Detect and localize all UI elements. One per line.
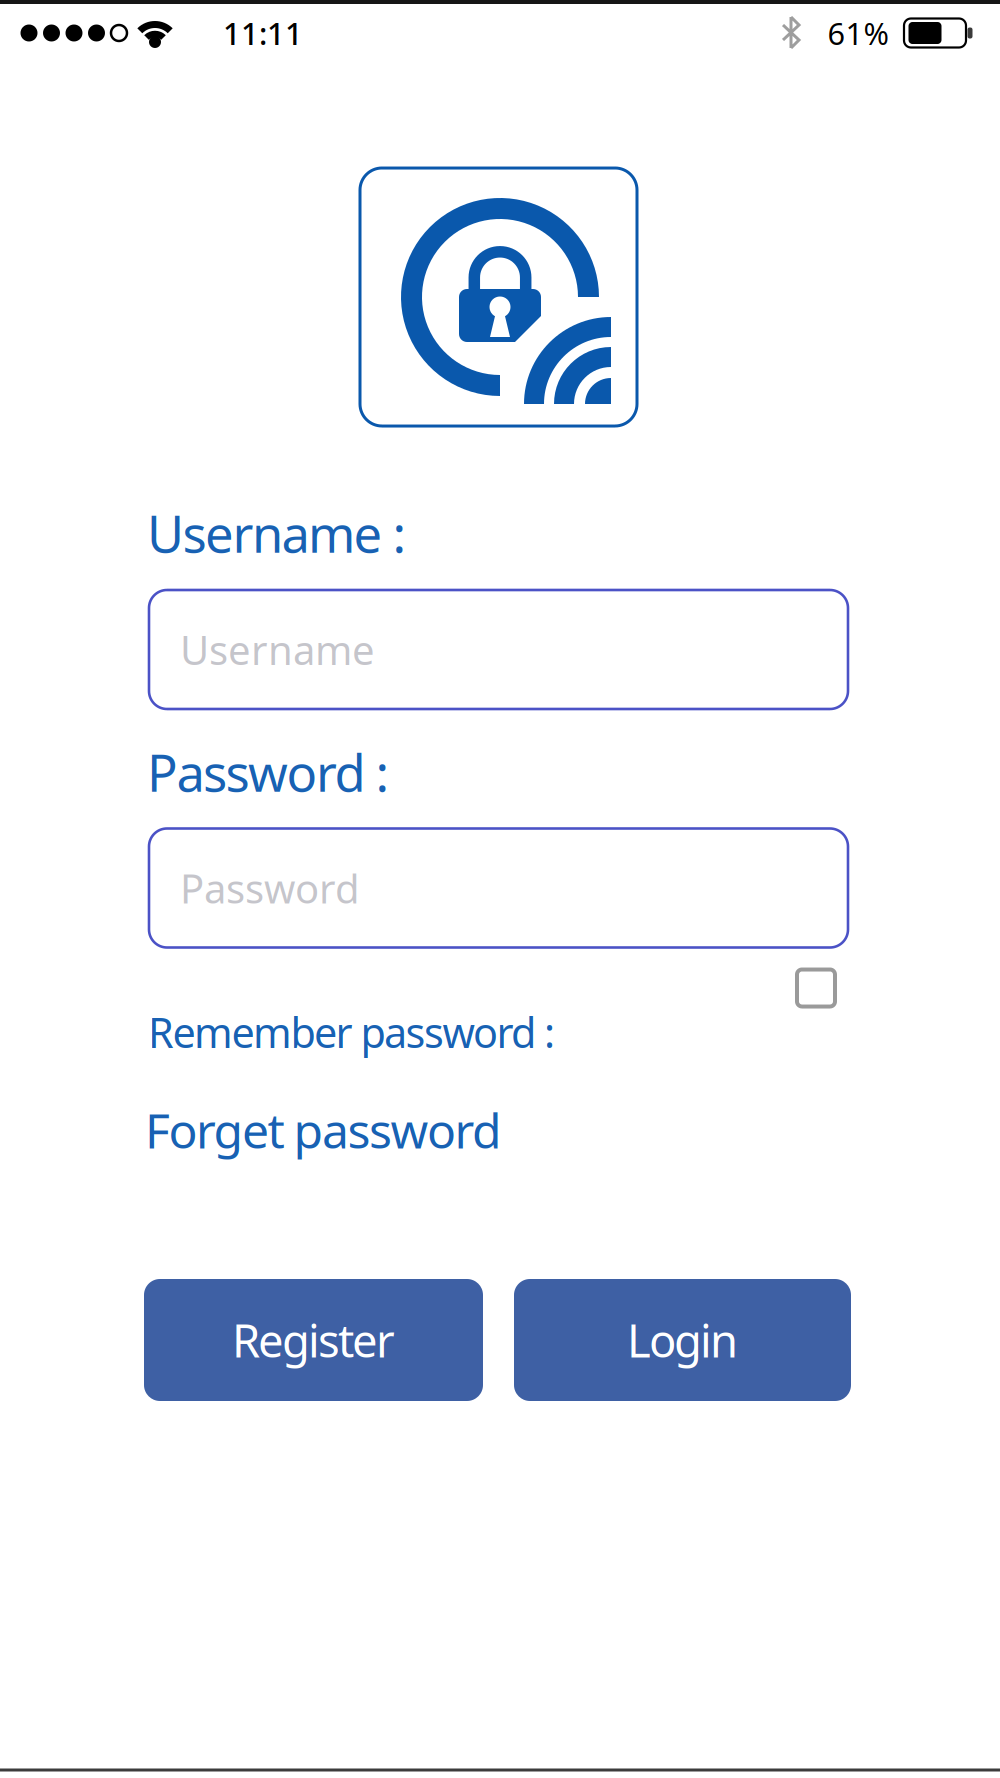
- button[interactable]: Forget password: [145, 1098, 502, 1162]
- button[interactable]: Username: [149, 590, 848, 709]
- staticText: 11:11: [223, 13, 303, 53]
- staticText: 61%: [827, 13, 888, 53]
- staticText: Register: [232, 1310, 395, 1370]
- staticText: Username: [180, 623, 375, 676]
- button[interactable]: [797, 969, 835, 1006]
- staticText: Password :: [147, 738, 389, 806]
- staticText: Login: [627, 1310, 738, 1370]
- button[interactable]: Password: [149, 828, 848, 947]
- staticText: Password: [180, 861, 360, 914]
- button[interactable]: Login: [514, 1279, 851, 1401]
- staticText: Forget password: [145, 1098, 502, 1162]
- staticText: Remember password :: [148, 1005, 555, 1059]
- staticText: Username :: [147, 499, 406, 567]
- button[interactable]: Register: [144, 1279, 483, 1401]
